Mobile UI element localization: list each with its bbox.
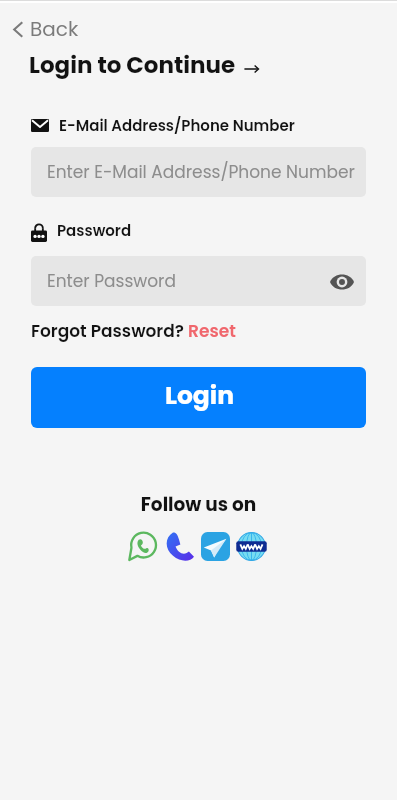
staticText: Login [165, 378, 235, 413]
staticText: Enter E-Mail Address/Phone Number [47, 160, 355, 184]
button[interactable]: Enter E-Mail Address/Phone Number [31, 147, 366, 197]
staticText: Password [57, 220, 132, 241]
button[interactable]: Enter Password [31, 256, 366, 306]
button[interactable]: Website [233, 528, 269, 564]
staticText: Enter Password [47, 269, 176, 293]
button[interactable]: Back [0, 14, 89, 44]
button[interactable]: Reset [188, 319, 236, 343]
button[interactable]: Login [31, 367, 366, 428]
staticText: Back [30, 15, 79, 43]
staticText: E-Mail Address/Phone Number [59, 115, 295, 136]
staticText: Reset [188, 319, 236, 343]
button[interactable]: Show password [318, 257, 366, 305]
button[interactable]: Telegram [197, 528, 233, 564]
staticText: Login to Continue [29, 49, 236, 81]
button[interactable]: Call us [162, 529, 196, 563]
button[interactable]: WhatsApp [124, 528, 160, 564]
staticText: Follow us on [0, 492, 397, 518]
staticText: Forgot Password? [31, 319, 184, 343]
